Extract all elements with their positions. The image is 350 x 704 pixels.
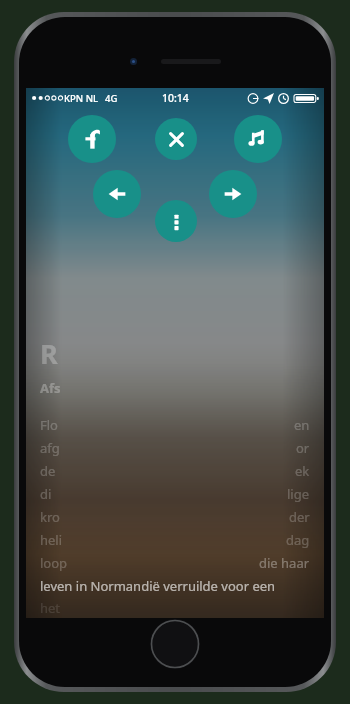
staticText: heli (40, 531, 63, 549)
button[interactable]: Music (234, 115, 282, 163)
staticText: die haar (259, 554, 310, 572)
staticText: dag (286, 531, 310, 549)
button[interactable]: More options (155, 200, 197, 242)
staticText: Flo (40, 416, 58, 434)
staticText: en (294, 416, 310, 434)
staticText: R (40, 335, 58, 372)
button[interactable]: Close (155, 118, 197, 160)
staticText: leven in Normandië verruilde voor een (40, 577, 276, 595)
staticText: de (40, 462, 56, 480)
staticText: di (40, 485, 52, 503)
staticText: lige (287, 485, 310, 503)
staticText: or (296, 439, 310, 457)
staticText: kro (40, 508, 60, 526)
button[interactable]: Previous (93, 170, 141, 218)
staticText: KPN NL (64, 92, 99, 105)
staticText: 10:14 (162, 91, 189, 105)
staticText: het (40, 599, 61, 617)
staticText: 4G (105, 92, 118, 105)
button[interactable]: Next (209, 170, 257, 218)
button[interactable]: Facebook (68, 115, 116, 163)
staticText: Afs (40, 379, 61, 397)
staticText: afg (40, 439, 60, 457)
button[interactable]: Home (150, 619, 200, 669)
staticText: der (289, 508, 310, 526)
staticText: loop (40, 554, 68, 572)
staticText: ek (295, 462, 310, 480)
